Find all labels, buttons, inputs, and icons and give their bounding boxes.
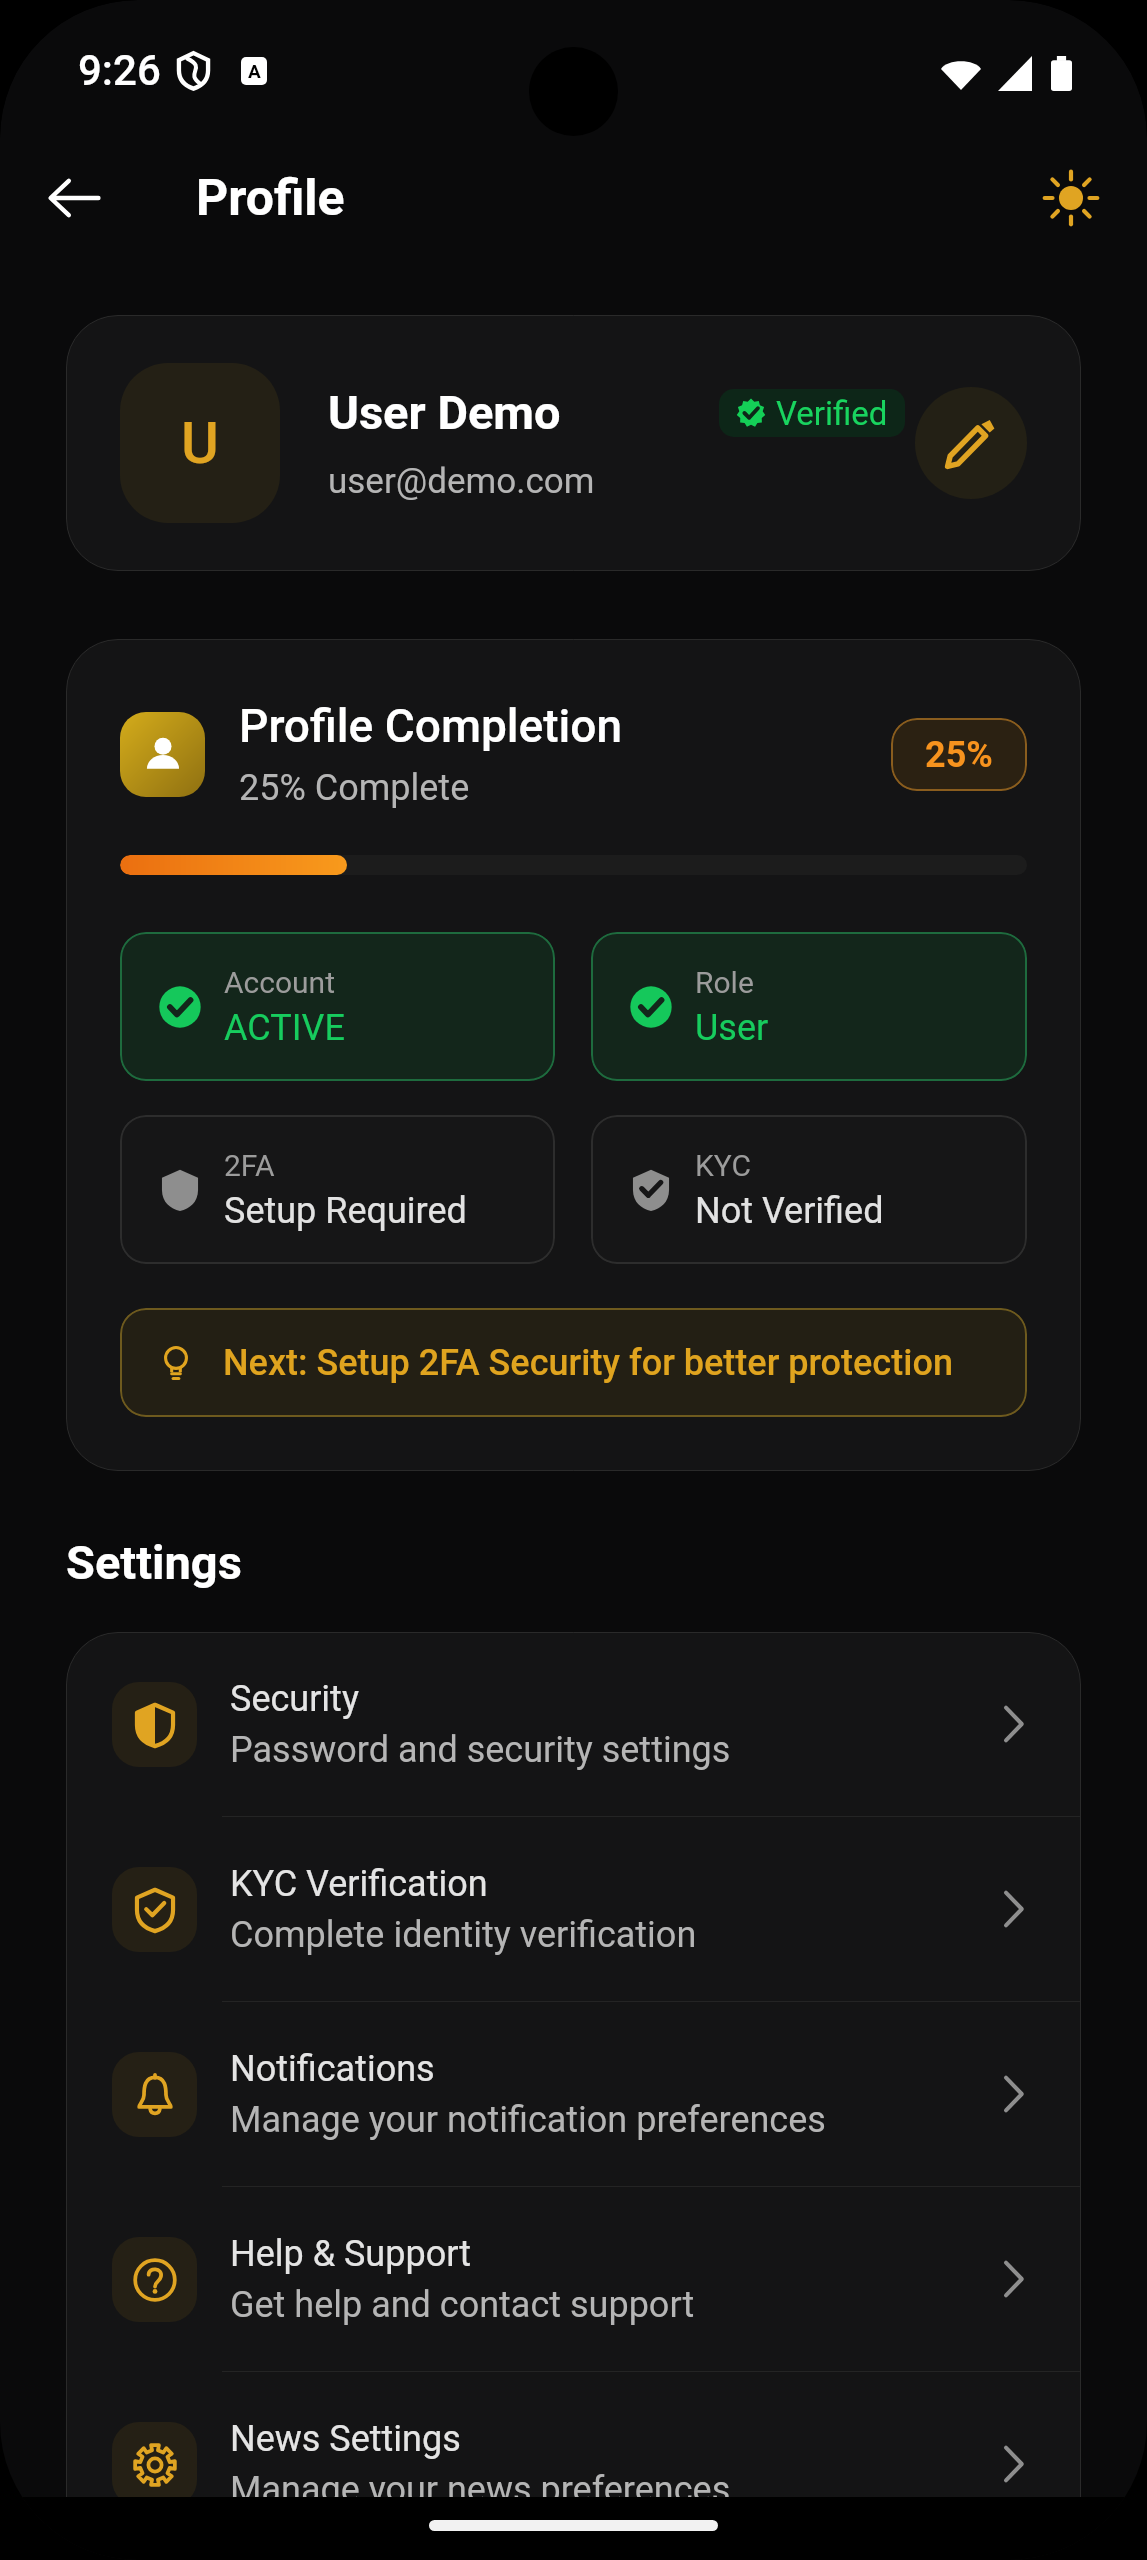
staticText: Profile [196,169,345,228]
staticText: User Demo [328,385,561,440]
staticText: ACTIVE [224,1007,345,1049]
button[interactable]: News Settings [66,2372,1081,2556]
button[interactable]: Toggle theme [1025,152,1117,244]
staticText: KYC [695,1148,751,1183]
button[interactable]: Back [28,152,120,244]
button[interactable]: Help & Support [66,2187,1081,2371]
staticText: Account [224,965,336,1000]
button[interactable]: KYC [591,1115,1027,1264]
button[interactable]: Account [120,932,555,1081]
staticText: Not Verified [695,1190,884,1232]
staticText: Get help and contact support [230,2284,695,2326]
staticText: 25% Complete [239,767,470,809]
button[interactable]: Edit profile [915,387,1027,499]
staticText: Complete identity verification [230,1914,697,1956]
staticText: user@demo.com [328,461,595,502]
staticText: Profile Completion [239,699,623,753]
staticText: Security [230,1678,359,1720]
staticText: Help & Support [230,2233,472,2275]
staticText: User [695,1007,769,1049]
button[interactable]: Notifications [66,2002,1081,2186]
staticText: 9:26 [78,46,161,95]
button[interactable]: Security [66,1632,1081,1816]
staticText: 25% [925,734,993,776]
button[interactable]: 2FA [120,1115,555,1264]
staticText: Manage your notification preferences [230,2099,826,2141]
staticText: Role [695,965,754,1000]
staticText: Settings [66,1535,242,1590]
staticText: KYC Verification [230,1863,488,1905]
button[interactable]: KYC Verification [66,1817,1081,2001]
button[interactable]: U [66,315,1081,571]
staticText: Verified [776,394,888,433]
staticText: U [181,409,219,477]
staticText: A [248,60,261,82]
staticText: Notifications [230,2048,435,2090]
button[interactable]: Next: Setup 2FA Security for better prot… [120,1308,1027,1417]
staticText: Manage your news preferences [230,2469,731,2511]
button[interactable]: Verified [719,389,905,437]
button[interactable]: Role [591,932,1027,1081]
staticText: News Settings [230,2418,461,2460]
staticText: Password and security settings [230,1729,731,1771]
staticText: Next: Setup 2FA Security for better prot… [223,1342,953,1384]
staticText: Setup Required [224,1190,467,1232]
staticText: 2FA [224,1148,275,1183]
